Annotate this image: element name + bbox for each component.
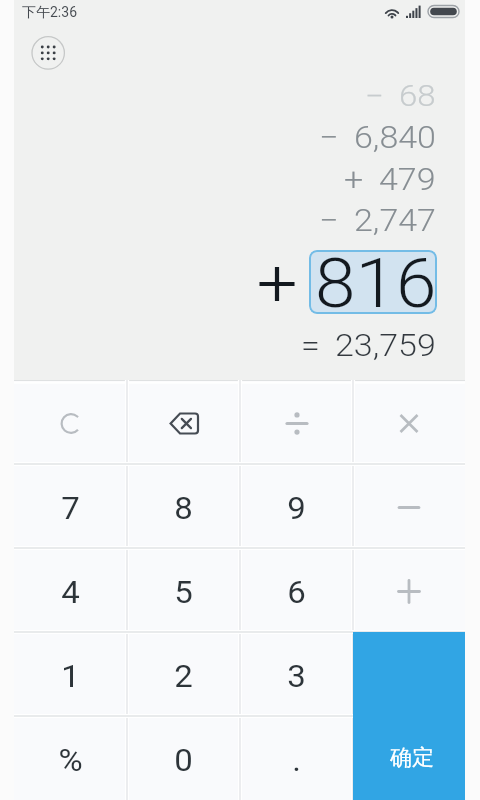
button[interactable]: 6 bbox=[240, 548, 353, 632]
staticText: 8 bbox=[174, 490, 193, 527]
button[interactable]: Divide bbox=[240, 380, 353, 464]
staticText: 下午2:36 bbox=[22, 4, 77, 22]
staticText: 479 bbox=[379, 161, 436, 197]
button[interactable]: Menu bbox=[28, 33, 69, 74]
button[interactable]: 5 bbox=[127, 548, 240, 632]
button[interactable]: 3 bbox=[240, 632, 353, 716]
staticText: 0 bbox=[174, 742, 193, 779]
button[interactable]: Multiply bbox=[353, 380, 465, 464]
button[interactable] bbox=[309, 250, 437, 314]
staticText: 816 bbox=[315, 242, 437, 324]
staticText: = bbox=[301, 327, 320, 363]
button[interactable]: Clear bbox=[14, 380, 127, 464]
button[interactable]: 7 bbox=[14, 464, 127, 548]
staticText: − bbox=[319, 202, 339, 238]
staticText: 7 bbox=[61, 490, 80, 527]
staticText: − bbox=[365, 78, 384, 113]
staticText: + bbox=[344, 161, 364, 197]
staticText: 2,747 bbox=[354, 202, 436, 238]
button[interactable]: Plus bbox=[353, 548, 465, 632]
button[interactable]: Backspace bbox=[127, 380, 240, 464]
button[interactable]: 2 bbox=[127, 632, 240, 716]
staticText: 确定 bbox=[390, 744, 434, 772]
button[interactable]: 9 bbox=[240, 464, 353, 548]
staticText: 3 bbox=[287, 658, 306, 695]
staticText: . bbox=[292, 742, 301, 779]
button[interactable]: . bbox=[240, 716, 353, 800]
staticText: 1 bbox=[61, 658, 80, 695]
button[interactable]: 0 bbox=[127, 716, 240, 800]
staticText: 6 bbox=[287, 574, 306, 611]
staticText: 5 bbox=[174, 574, 193, 611]
staticText: 4 bbox=[61, 574, 80, 611]
staticText: 68 bbox=[399, 78, 436, 113]
staticText: 9 bbox=[287, 490, 306, 527]
button[interactable]: 4 bbox=[14, 548, 127, 632]
button[interactable]: % bbox=[14, 716, 127, 800]
button[interactable]: 1 bbox=[14, 632, 127, 716]
staticText: 6,840 bbox=[354, 119, 436, 155]
staticText: % bbox=[58, 742, 83, 779]
button[interactable]: OK bbox=[353, 632, 465, 800]
staticText: 23,759 bbox=[335, 327, 436, 363]
button[interactable]: Minus bbox=[353, 464, 465, 548]
staticText: 2 bbox=[174, 658, 193, 695]
button[interactable]: 8 bbox=[127, 464, 240, 548]
staticText: − bbox=[319, 119, 339, 155]
